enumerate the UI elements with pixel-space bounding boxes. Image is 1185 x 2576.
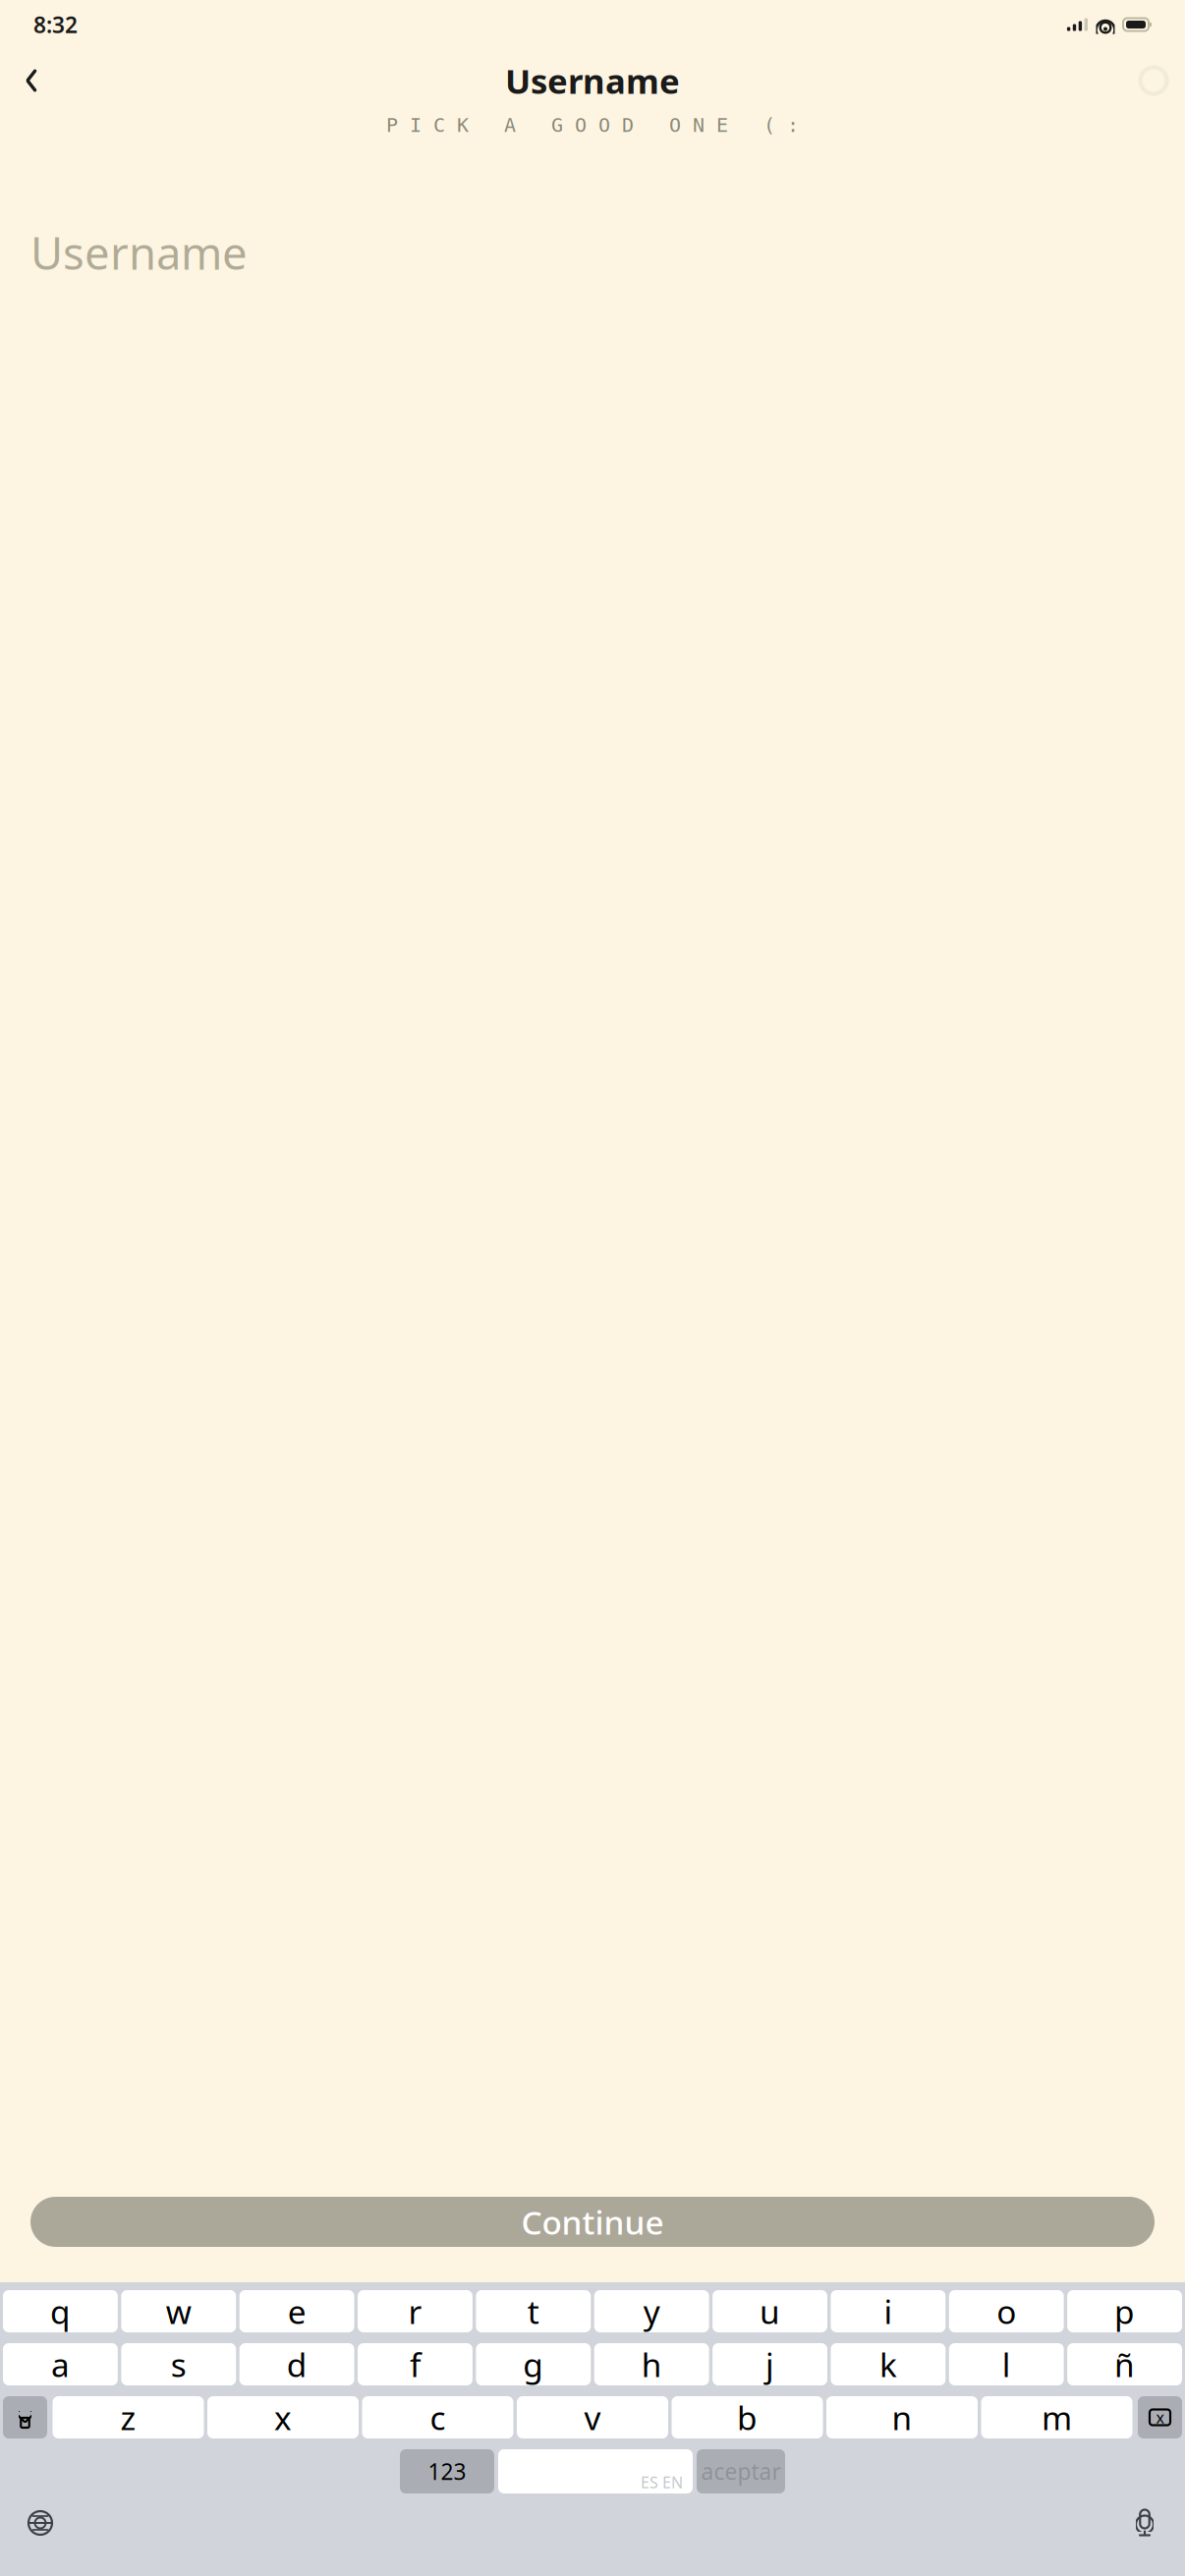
staticText: a [51,2343,70,2386]
button[interactable]: x [207,2396,359,2438]
staticText: g [523,2343,544,2386]
staticText: l [1002,2343,1011,2386]
button[interactable]: Delete [1138,2396,1182,2438]
staticText: 123 [428,2457,466,2486]
staticText: Username [30,223,248,282]
staticText: k [879,2343,897,2386]
button[interactable]: i [831,2290,946,2332]
staticText: ñ [1114,2343,1135,2386]
button[interactable]: c [362,2396,513,2438]
button[interactable]: y [594,2290,709,2332]
staticText: i [884,2290,893,2333]
button[interactable]: f [358,2343,473,2385]
button[interactable]: k [831,2343,946,2385]
staticText: o [997,2290,1016,2333]
button[interactable]: g [476,2343,591,2385]
staticText: h [641,2343,662,2386]
staticText: p [1114,2290,1135,2333]
button[interactable]: o [949,2290,1064,2332]
button[interactable]: r [358,2290,473,2332]
staticText: P I C K A G O O D O N E ( : [386,114,799,136]
staticText: aceptar [701,2457,781,2486]
button[interactable]: Back [10,59,53,102]
staticText: t [527,2290,539,2333]
button[interactable]: z [53,2396,204,2438]
staticText: x [274,2396,292,2439]
staticText: q [50,2290,71,2333]
button[interactable]: Shift [3,2396,47,2438]
button[interactable]: b [672,2396,823,2438]
button[interactable]: w [121,2290,236,2332]
staticText: s [171,2343,186,2386]
button[interactable]: Next keyboard [18,2503,63,2543]
staticText: m [1042,2396,1072,2439]
button[interactable]: Space [498,2449,693,2493]
button[interactable]: Continue [30,2197,1155,2247]
staticText: 8:32 [33,10,78,39]
staticText: v [584,2396,601,2439]
staticText: Continue [521,2200,664,2244]
staticText: d [287,2343,307,2386]
button[interactable]: t [476,2290,591,2332]
staticText: u [760,2290,780,2333]
staticText: Username [505,58,680,103]
staticText: n [892,2396,912,2439]
button[interactable]: a [3,2343,118,2385]
staticText: b [737,2396,758,2439]
button[interactable]: h [594,2343,709,2385]
staticText: ES EN [641,2472,683,2493]
button[interactable]: v [517,2396,668,2438]
button[interactable]: e [239,2290,354,2332]
button[interactable]: n [826,2396,978,2438]
staticText: y [643,2290,660,2333]
staticText: e [288,2290,306,2333]
button[interactable]: j [712,2343,827,2385]
button[interactable]: aceptar [697,2449,785,2493]
staticText: x [1156,2407,1164,2428]
button[interactable]: Progress [1132,59,1175,102]
button[interactable]: m [981,2396,1132,2438]
button[interactable]: p [1067,2290,1182,2332]
button[interactable]: d [239,2343,354,2385]
button[interactable]: s [121,2343,236,2385]
button[interactable]: l [949,2343,1064,2385]
staticText: c [430,2396,446,2439]
button[interactable]: 123 [400,2449,494,2493]
button[interactable]: u [712,2290,827,2332]
button[interactable]: Dictate [1122,2503,1167,2543]
staticText: r [408,2290,422,2333]
staticText: w [166,2290,191,2333]
staticText: z [120,2396,136,2439]
button[interactable]: ñ [1067,2343,1182,2385]
staticText: f [410,2343,421,2386]
staticText: j [765,2343,774,2386]
button[interactable]: q [3,2290,118,2332]
